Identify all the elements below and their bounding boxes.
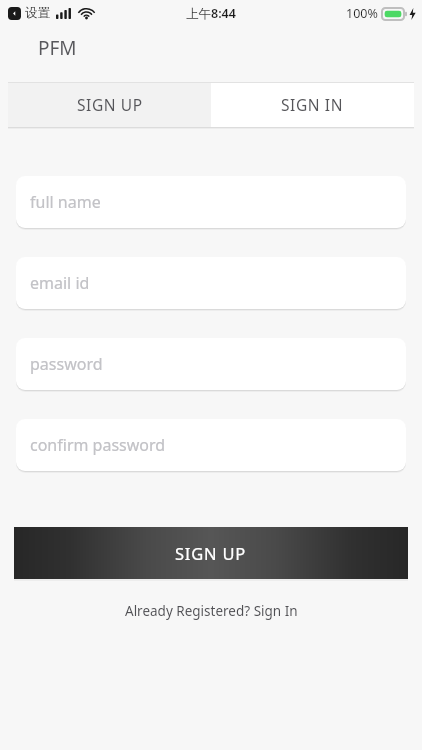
staticText: Already Registered? Sign In bbox=[125, 602, 298, 620]
staticText: 100% bbox=[346, 5, 378, 22]
staticText: full name bbox=[30, 191, 101, 213]
button[interactable]: Already Registered? Sign In bbox=[113, 598, 310, 624]
button[interactable]: SIGN IN bbox=[211, 82, 414, 127]
staticText: PFM bbox=[38, 35, 77, 61]
staticText: 设置 bbox=[25, 5, 50, 21]
staticText: SIGN UP bbox=[175, 542, 247, 564]
button[interactable]: password bbox=[16, 338, 406, 390]
button[interactable]: full name bbox=[16, 176, 406, 228]
staticText: password bbox=[30, 353, 103, 375]
staticText: SIGN UP bbox=[77, 94, 143, 115]
staticText: email id bbox=[30, 272, 90, 294]
button[interactable]: email id bbox=[16, 257, 406, 309]
staticText: 上午8:44 bbox=[186, 5, 236, 22]
button[interactable]: SIGN UP bbox=[8, 82, 211, 127]
staticText: confirm password bbox=[30, 434, 166, 456]
button[interactable]: confirm password bbox=[16, 419, 406, 471]
staticText: SIGN IN bbox=[281, 94, 344, 115]
button[interactable]: SIGN UP bbox=[14, 527, 408, 579]
